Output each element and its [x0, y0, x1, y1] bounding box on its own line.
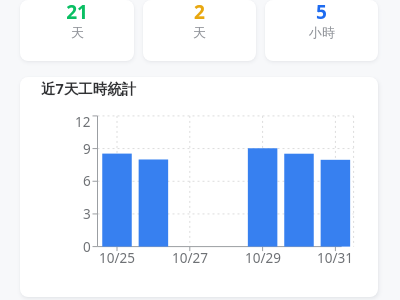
staticText: 10/25	[99, 249, 135, 265]
staticText: 3	[83, 205, 91, 223]
staticText: 10/29	[245, 249, 281, 265]
staticText: 10/27	[172, 249, 208, 265]
button[interactable]: 近7天工時統計	[20, 77, 378, 297]
button[interactable]: 2	[143, 0, 256, 61]
staticText: 6	[83, 172, 91, 190]
staticText: 近7天工時統計	[41, 78, 137, 98]
staticText: 2	[194, 0, 205, 25]
staticText: 21	[66, 0, 88, 25]
button[interactable]: 21	[20, 0, 134, 61]
staticText: 0	[83, 238, 91, 256]
staticText: 10/31	[317, 249, 353, 265]
staticText: 12	[75, 113, 91, 131]
staticText: 天	[71, 24, 84, 40]
staticText: 9	[83, 140, 91, 158]
staticText: 小時	[309, 24, 335, 40]
staticText: 5	[316, 0, 327, 25]
staticText: 天	[193, 24, 206, 40]
button[interactable]: 5	[265, 0, 378, 61]
